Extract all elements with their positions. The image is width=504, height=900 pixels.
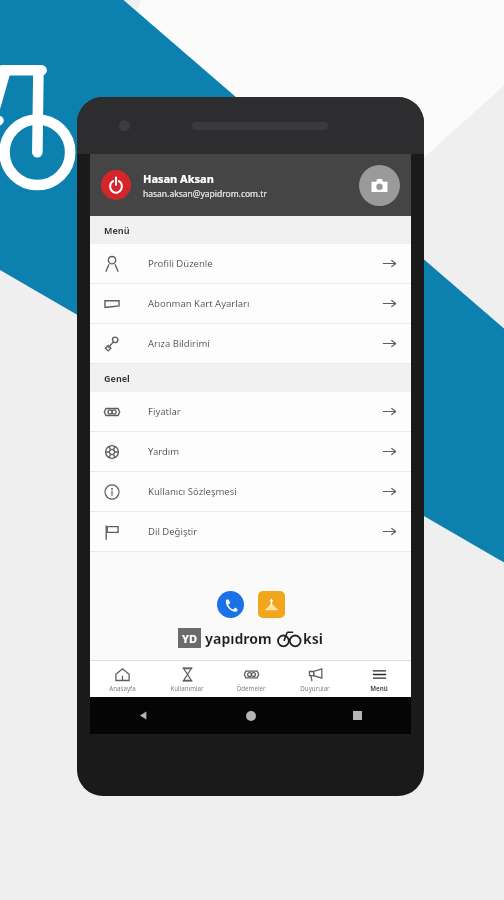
staticText: yapıdrom — [205, 629, 272, 648]
button[interactable]: Çıkış yap — [101, 170, 131, 200]
staticText: Dil Değiştir — [148, 525, 198, 538]
button[interactable]: Kullanımlar — [155, 661, 219, 697]
button[interactable]: Fotoğraf çek — [359, 165, 400, 206]
button[interactable]: Dil Değiştir — [90, 512, 411, 551]
staticText: Abonman Kart Ayarları — [148, 297, 250, 310]
staticText: Yardım — [148, 445, 180, 458]
staticText: Menü — [104, 224, 130, 236]
staticText: Kullanıcı Sözleşmesi — [148, 485, 237, 498]
other: Ana ekran — [246, 711, 256, 721]
button[interactable]: Fiyatlar — [90, 392, 411, 431]
button[interactable]: Profili Düzenle — [90, 244, 411, 283]
staticText: Kullanımlar — [170, 684, 204, 692]
button[interactable]: Kullanıcı Sözleşmesi — [90, 472, 411, 511]
button[interactable]: Duyurular — [283, 661, 347, 697]
staticText: YD — [182, 631, 197, 646]
button[interactable]: Telefon — [217, 591, 244, 618]
button[interactable]: Menü — [347, 661, 411, 697]
button[interactable]: Abonman Kart Ayarları — [90, 284, 411, 323]
staticText: Genel — [104, 372, 130, 384]
other: Geri — [138, 710, 149, 721]
staticText: Hasan Aksan — [143, 171, 214, 186]
staticText: Profili Düzenle — [148, 257, 213, 270]
staticText: Ödemeler — [236, 684, 266, 692]
staticText: Fiyatlar — [148, 405, 181, 418]
staticText: Anasayfa — [109, 684, 136, 692]
staticText: hasan.aksan@yapidrom.com.tr — [143, 188, 267, 200]
staticText: ksi — [303, 629, 323, 648]
button[interactable]: Ödemeler — [219, 661, 283, 697]
button[interactable]: Arıza Bildirimi — [90, 324, 411, 363]
button[interactable]: Yardım — [90, 432, 411, 471]
button[interactable]: E-posta — [258, 591, 285, 618]
button[interactable]: Anasayfa — [90, 661, 155, 697]
staticText: Menü — [370, 684, 388, 692]
staticText: Arıza Bildirimi — [148, 337, 210, 350]
staticText: Duyurular — [300, 684, 330, 692]
